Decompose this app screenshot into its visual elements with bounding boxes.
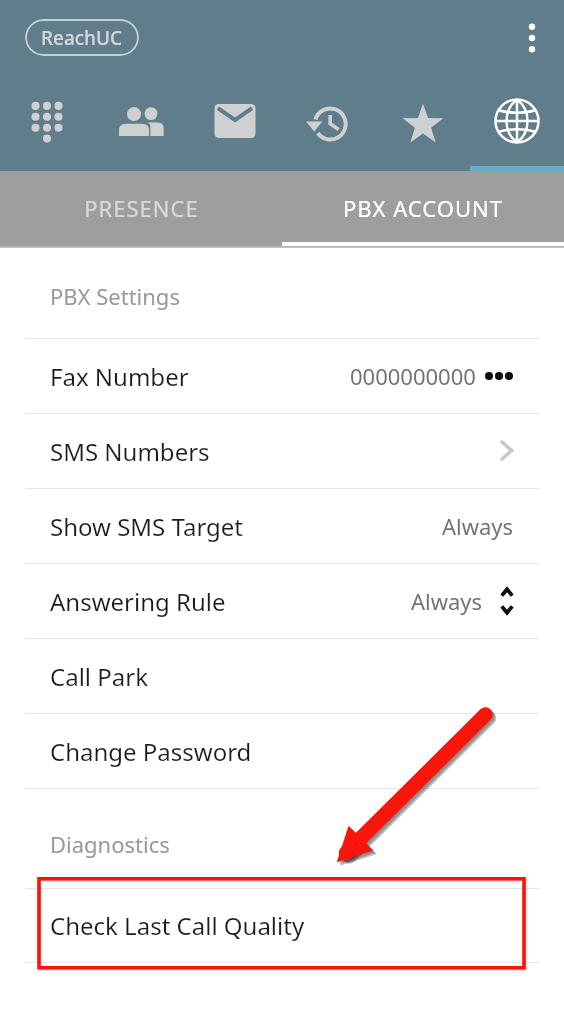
staticText: PBX Settings [50,281,180,311]
staticText: Change Password [50,735,252,768]
button[interactable]: Answering Rule [0,564,564,638]
staticText: Fax Number [50,360,189,393]
button[interactable]: Call Park [0,639,564,713]
button[interactable]: Favorites [376,76,470,171]
button[interactable]: Settings [470,76,564,171]
staticText: Diagnostics [50,829,170,859]
staticText: ReachUC [41,25,123,51]
button[interactable]: Messages [188,76,282,171]
button[interactable]: SMS Numbers [0,414,564,488]
staticText: Show SMS Target [50,510,244,543]
button[interactable]: PBX ACCOUNT [282,171,564,245]
staticText: PRESENCE [84,193,199,223]
button[interactable]: Contacts [94,76,188,171]
staticText: Answering Rule [50,585,226,618]
staticText: SMS Numbers [50,435,210,468]
staticText: Always [442,511,514,541]
button[interactable]: Dialpad [0,76,94,171]
staticText: Check Last Call Quality [50,909,305,942]
button[interactable]: ReachUC [25,19,139,56]
button[interactable]: More options [506,12,558,64]
button[interactable]: Check Last Call Quality [0,889,564,962]
staticText: 0000000000 [350,361,476,391]
staticText: PBX ACCOUNT [343,193,503,223]
button[interactable]: Change Password [0,714,564,788]
staticText: Always [411,586,483,616]
button[interactable]: Fax Number [0,339,564,413]
button[interactable]: History [282,76,376,171]
button[interactable]: Show SMS Target [0,489,564,563]
staticText: Call Park [50,660,148,693]
button[interactable]: PRESENCE [0,171,282,245]
